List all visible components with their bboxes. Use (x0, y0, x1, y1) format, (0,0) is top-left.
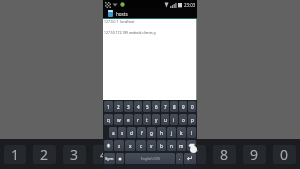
staticText: b (160, 143, 163, 149)
staticText: o (182, 117, 185, 123)
staticText: h (160, 130, 163, 136)
button[interactable]: n (167, 140, 176, 151)
staticText: 127.0.0.1 localhost (104, 19, 135, 24)
staticText: c (140, 143, 143, 149)
button[interactable]: 5 (123, 145, 146, 164)
staticText: 2 (117, 104, 120, 110)
button[interactable]: 1 (104, 101, 113, 112)
button[interactable]: e (124, 114, 133, 125)
button[interactable]: 3 (63, 145, 86, 164)
button[interactable]: 7 (183, 145, 206, 164)
button[interactable]: h (157, 127, 166, 138)
button[interactable]: Period (176, 153, 183, 164)
staticText: e (127, 117, 130, 123)
button[interactable]: w (114, 114, 123, 125)
staticText: t (146, 117, 148, 123)
staticText: 4 (137, 104, 140, 110)
button[interactable]: Settings (116, 153, 124, 164)
button[interactable]: q (104, 114, 113, 125)
staticText: u (164, 117, 167, 123)
staticText: l (191, 130, 193, 136)
staticText: j (171, 130, 173, 136)
staticText: i (173, 117, 175, 123)
button[interactable]: j (167, 127, 176, 138)
staticText: p (191, 117, 194, 123)
staticText: 127.50.172.189 android.clients.g (104, 30, 156, 35)
button[interactable]: p (188, 114, 196, 125)
staticText: . (179, 155, 181, 162)
staticText: m (179, 143, 184, 149)
staticText: 7 (190, 145, 199, 164)
staticText: 0 (191, 104, 194, 110)
staticText: r (137, 117, 139, 123)
button[interactable]: i (170, 114, 178, 125)
button[interactable]: Enter (184, 153, 196, 164)
staticText: 7 (164, 104, 167, 110)
button[interactable]: o (179, 114, 187, 125)
button[interactable]: c (136, 140, 146, 151)
button[interactable]: Backspace (187, 140, 196, 151)
staticText: g (150, 130, 153, 136)
staticText: 3 (127, 104, 130, 110)
button[interactable]: y (152, 114, 160, 125)
staticText: s (121, 130, 124, 136)
button[interactable]: Shift (104, 140, 113, 151)
staticText: 5 (146, 104, 149, 110)
staticText: ↵ (187, 155, 193, 163)
button[interactable]: r (134, 114, 142, 125)
button[interactable]: s (118, 127, 126, 138)
button[interactable]: u (161, 114, 169, 125)
button[interactable]: 6 (152, 101, 160, 112)
staticText: y (155, 117, 158, 123)
staticText: f (141, 130, 143, 136)
button[interactable]: b (157, 140, 166, 151)
staticText: 5 (130, 145, 139, 164)
button[interactable]: 7 (161, 101, 169, 112)
staticText: 9 (182, 104, 185, 110)
button[interactable]: 3 (124, 101, 133, 112)
button[interactable]: 8 (213, 145, 236, 164)
button[interactable]: d (127, 127, 136, 138)
button[interactable]: 2 (33, 145, 56, 164)
staticText: n (170, 143, 173, 149)
staticText: 1 (107, 104, 110, 110)
button[interactable]: z (114, 140, 124, 151)
button[interactable]: 9 (179, 101, 187, 112)
staticText: 1 (11, 145, 20, 164)
staticText: x (129, 143, 132, 149)
button[interactable]: g (147, 127, 156, 138)
staticText: 23:03 (184, 2, 196, 8)
staticText: q (107, 117, 110, 123)
button[interactable]: App icon (108, 10, 113, 17)
button[interactable]: k (177, 127, 186, 138)
button[interactable]: v (147, 140, 156, 151)
button[interactable]: f (137, 127, 146, 138)
button[interactable]: 6 (153, 145, 176, 164)
button[interactable]: Sym (104, 153, 115, 164)
button[interactable]: 9 (243, 145, 266, 164)
staticText: 0 (280, 145, 289, 164)
button[interactable]: a (109, 127, 117, 138)
button[interactable]: 0 (273, 145, 296, 164)
staticText: Sym (105, 156, 114, 162)
button[interactable]: 4 (134, 101, 142, 112)
staticText: d (130, 130, 133, 136)
button[interactable]: l (187, 127, 196, 138)
button[interactable]: 2 (114, 101, 123, 112)
staticText: 2 (40, 145, 49, 164)
button[interactable]: 5 (143, 101, 151, 112)
button[interactable]: 1 (4, 145, 26, 164)
button[interactable]: Space (125, 153, 175, 164)
button[interactable]: 4 (93, 145, 116, 164)
button[interactable]: 8 (170, 101, 178, 112)
button[interactable]: m (177, 140, 186, 151)
button[interactable]: x (125, 140, 135, 151)
staticText: v (150, 143, 153, 149)
staticText: 6 (160, 145, 169, 164)
button[interactable]: 0 (188, 101, 196, 112)
staticText: 3 (70, 145, 79, 164)
staticText: w (117, 117, 121, 123)
staticText: 6 (155, 104, 158, 110)
button[interactable]: t (143, 114, 151, 125)
staticText: 8 (173, 104, 176, 110)
